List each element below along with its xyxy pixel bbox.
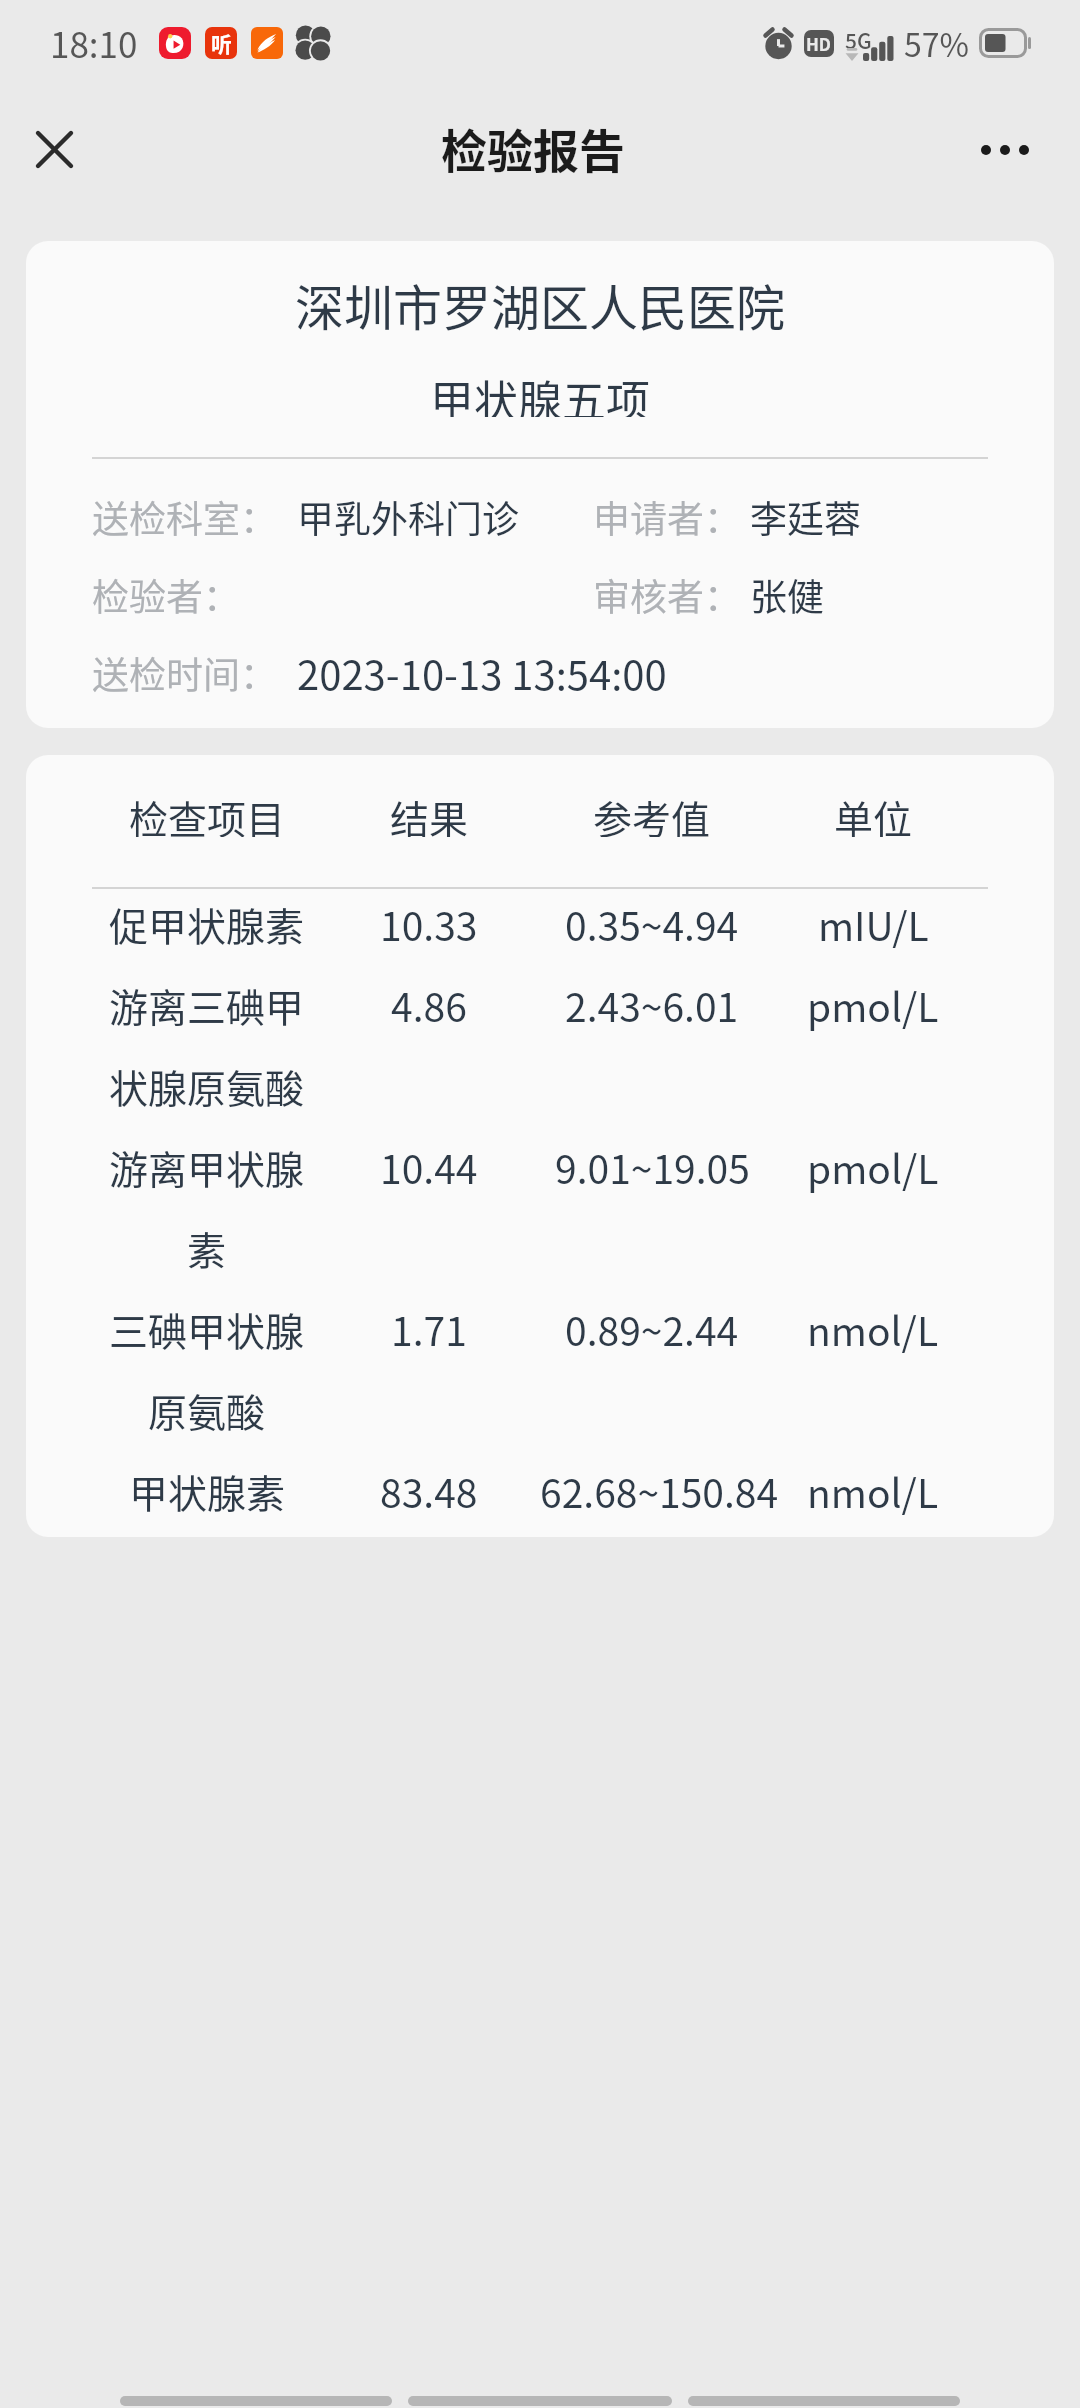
staticText: nmol/L — [807, 1463, 939, 1519]
staticText: 检查项目 — [129, 789, 286, 837]
staticText: nmol/L — [807, 1301, 939, 1357]
staticText: 1.71 — [391, 1301, 467, 1357]
staticText: 张健 — [750, 568, 824, 622]
staticText: 原氨酸 — [148, 1382, 266, 1438]
staticText: mIU/L — [818, 896, 929, 952]
staticText: 游离三碘甲 — [109, 977, 305, 1033]
staticText: 检验者： — [92, 568, 240, 622]
staticText: 李廷蓉 — [750, 490, 861, 544]
staticText: 听 — [211, 28, 232, 58]
staticText: 57% — [904, 20, 969, 66]
staticText: 2023-10-13 13:54:00 — [297, 644, 667, 702]
staticText: pmol/L — [807, 977, 939, 1033]
staticText: 10.33 — [380, 896, 478, 952]
button[interactable]: Home — [408, 2396, 672, 2406]
staticText: 0.89~2.44 — [565, 1301, 739, 1357]
staticText: 62.68~150.84 — [540, 1463, 764, 1519]
staticText: 游离甲状腺 — [109, 1139, 305, 1195]
staticText: 甲状腺素 — [129, 1463, 286, 1519]
button[interactable]: More options — [967, 115, 1043, 191]
staticText: 检验报告 — [441, 115, 625, 182]
staticText: 送检科室： — [92, 490, 277, 544]
staticText: 深圳市罗湖区人民医院 — [295, 269, 786, 340]
button[interactable]: Close — [20, 118, 90, 188]
staticText: 申请者： — [593, 490, 741, 544]
staticText: 单位 — [834, 789, 913, 837]
staticText: 甲乳外科门诊 — [297, 490, 519, 544]
button[interactable]: Back — [120, 2396, 392, 2406]
staticText: 素 — [187, 1220, 227, 1276]
staticText: 促甲状腺素 — [109, 896, 305, 952]
staticText: 三碘甲状腺 — [109, 1301, 305, 1357]
staticText: 送检时间： — [92, 646, 277, 700]
staticText: 9.01~19.05 — [555, 1139, 750, 1195]
staticText: 结果 — [390, 789, 469, 837]
staticText: 18:10 — [50, 17, 138, 68]
button[interactable]: Recent apps — [688, 2396, 960, 2406]
staticText: 状腺原氨酸 — [109, 1058, 305, 1114]
staticText: 5G — [845, 25, 872, 55]
staticText: 0.35~4.94 — [565, 896, 739, 952]
staticText: pmol/L — [807, 1139, 939, 1195]
staticText: HD — [806, 31, 832, 56]
staticText: 83.48 — [380, 1463, 478, 1519]
staticText: 10.44 — [380, 1139, 478, 1195]
staticText: 参考值 — [593, 789, 711, 837]
staticText: 4.86 — [391, 977, 467, 1033]
staticText: 2.43~6.01 — [565, 977, 739, 1033]
staticText: 甲状腺五项 — [430, 367, 650, 417]
staticText: 审核者： — [593, 568, 741, 622]
